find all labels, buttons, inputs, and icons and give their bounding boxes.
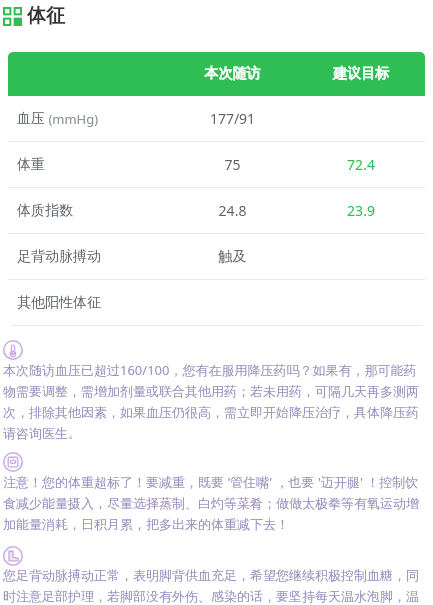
button[interactable]: 体质指数 (8, 187, 425, 233)
staticText: 本次随访血压已超过160/100，您有在服用降压药吗？如果有，那可能药物需要调整… (3, 361, 427, 442)
staticText: 足背动脉搏动 (17, 248, 101, 266)
staticText: 72.4 (297, 155, 425, 174)
other: Weight (3, 452, 23, 472)
staticText: 本次随访 (168, 65, 297, 83)
button[interactable]: 足背动脉搏动 (8, 233, 425, 279)
other: Foot pulse (3, 546, 23, 566)
button[interactable]: 体重 (8, 141, 425, 187)
staticText: 其他阳性体征 (17, 294, 101, 312)
staticText: (mmHg) (45, 110, 99, 128)
button[interactable]: 其他阳性体征 (8, 279, 425, 325)
button[interactable]: 血压 (8, 96, 425, 141)
staticText: 75 (168, 155, 297, 174)
staticText: 24.8 (168, 201, 297, 220)
staticText: 您足背动脉搏动正常，表明脚背供血充足，希望您继续积极控制血糖，同时注意足部护理，… (3, 567, 427, 605)
staticText: 177/91 (168, 109, 297, 128)
staticText: 血压 (17, 110, 45, 128)
button[interactable]: 体征 (3, 4, 433, 28)
other: Blood pressure (3, 340, 23, 360)
staticText: 体质指数 (17, 202, 73, 220)
staticText: 体重 (17, 156, 45, 174)
staticText: 触及 (168, 248, 297, 266)
staticText: 建议目标 (297, 65, 425, 83)
staticText: 注意！您的体重超标了！要减重，既要 '管住嘴' ，也要 '迈开腿' ！控制饮食减… (3, 473, 427, 533)
staticText: 体征 (27, 4, 65, 28)
staticText: 23.9 (297, 201, 425, 220)
